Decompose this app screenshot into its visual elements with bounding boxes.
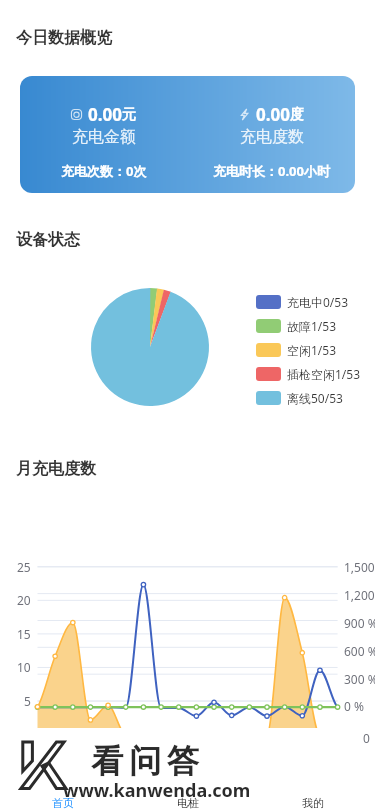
staticText: 设备状态 — [16, 230, 80, 250]
staticText: 15 — [17, 626, 31, 642]
staticText: 充电金额 — [72, 127, 136, 147]
staticText: 元 — [122, 106, 136, 124]
staticText: 20 — [17, 592, 31, 608]
button[interactable]: 离线50/53 — [256, 386, 343, 410]
staticText: 首页 — [52, 796, 74, 810]
staticText: 25 — [17, 559, 31, 575]
staticText: 充电时长：0.00小时 — [213, 162, 330, 180]
staticText: 插枪空闲1/53 — [287, 366, 361, 382]
button[interactable]: 充电中0/53 — [256, 290, 349, 314]
staticText: 月充电度数 — [16, 459, 96, 479]
button[interactable]: 0.00 — [20, 76, 355, 193]
staticText: 充电次数：0次 — [61, 162, 147, 180]
staticText: 1,500 % — [344, 559, 375, 575]
button[interactable]: 空闲1/53 — [256, 338, 337, 362]
staticText: 600 % — [344, 643, 375, 659]
staticText: 充电度数 — [240, 127, 304, 147]
staticText: 5 — [24, 693, 31, 709]
staticText: 度 — [290, 106, 304, 124]
staticText: 看问答 — [88, 741, 202, 781]
staticText: 电桩 — [177, 796, 199, 810]
button[interactable]: 我的 — [250, 798, 375, 812]
staticText: 充电中0/53 — [287, 294, 349, 310]
staticText: 空闲1/53 — [287, 342, 337, 358]
staticText: 0.00 — [256, 103, 290, 126]
staticText: 故障1/53 — [287, 318, 337, 334]
staticText: 我的 — [302, 796, 324, 810]
staticText: 0 % — [344, 698, 364, 714]
staticText: 10 — [17, 659, 31, 675]
staticText: 900 % — [344, 615, 375, 631]
staticText: 离线50/53 — [287, 390, 343, 406]
staticText: 0 — [363, 730, 370, 746]
button[interactable]: 首页 — [0, 798, 125, 812]
button[interactable]: 故障1/53 — [256, 314, 337, 338]
staticText: 300 % — [344, 671, 375, 687]
staticText: www.kanwenda.com — [63, 778, 251, 803]
staticText: 今日数据概览 — [16, 28, 112, 48]
staticText: 0.00 — [88, 103, 122, 126]
button[interactable]: 插枪空闲1/53 — [256, 362, 361, 386]
button[interactable]: 电桩 — [125, 798, 250, 812]
staticText: 1,200 % — [344, 587, 375, 603]
